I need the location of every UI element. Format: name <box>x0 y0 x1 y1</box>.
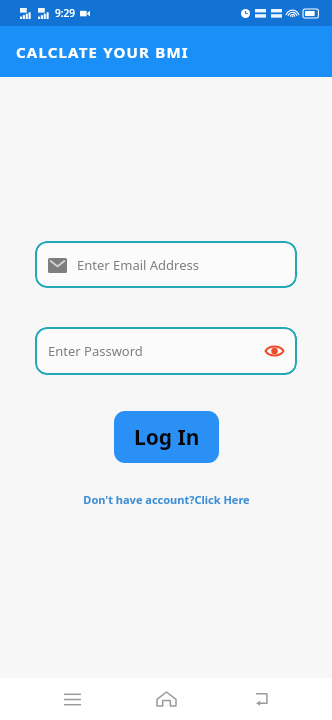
button[interactable]: Enter Email Address <box>35 241 297 288</box>
staticText: Enter Password <box>48 342 143 360</box>
staticText: 9:29 <box>55 6 75 20</box>
button[interactable]: Home <box>143 678 189 720</box>
button[interactable]: Don't have account?Click Here <box>77 489 256 510</box>
button[interactable]: Enter Password <box>35 327 297 375</box>
button[interactable]: Recent apps <box>49 678 95 720</box>
button[interactable]: Show password <box>262 339 286 363</box>
button[interactable]: Log In <box>114 411 219 463</box>
staticText: Enter Email Address <box>77 256 199 274</box>
button[interactable]: Back <box>238 678 284 720</box>
staticText: Log In <box>134 423 200 452</box>
staticText: CALCLATE YOUR BMI <box>16 42 189 62</box>
